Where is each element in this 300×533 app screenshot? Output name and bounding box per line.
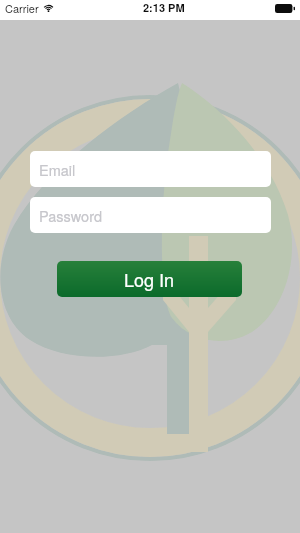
staticText: Email xyxy=(39,159,76,180)
staticText: Carrier xyxy=(5,0,39,16)
button[interactable]: Password xyxy=(30,197,271,233)
staticText: 2:13 PM xyxy=(143,0,185,16)
staticText: Password xyxy=(39,205,103,226)
staticText: Log In xyxy=(124,266,175,292)
button[interactable]: Email xyxy=(30,151,271,187)
button[interactable]: Log In xyxy=(57,261,242,297)
